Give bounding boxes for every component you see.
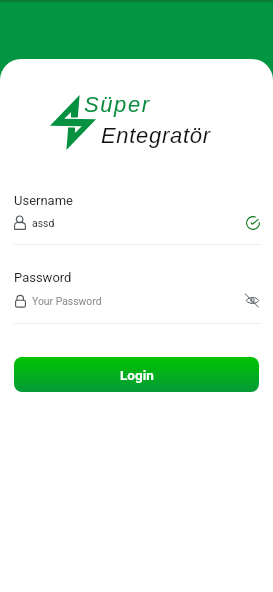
button[interactable]: Login (14, 357, 259, 392)
button[interactable]: Show password (242, 291, 262, 311)
staticText: Username (14, 193, 73, 208)
staticText: Süper (84, 92, 151, 117)
staticText: Password (14, 270, 72, 285)
staticText: Entegratör (101, 123, 211, 148)
staticText: assd (32, 217, 55, 229)
staticText: Login (120, 367, 154, 383)
staticText: Your Password (32, 295, 102, 307)
other: Username valid (244, 214, 261, 231)
